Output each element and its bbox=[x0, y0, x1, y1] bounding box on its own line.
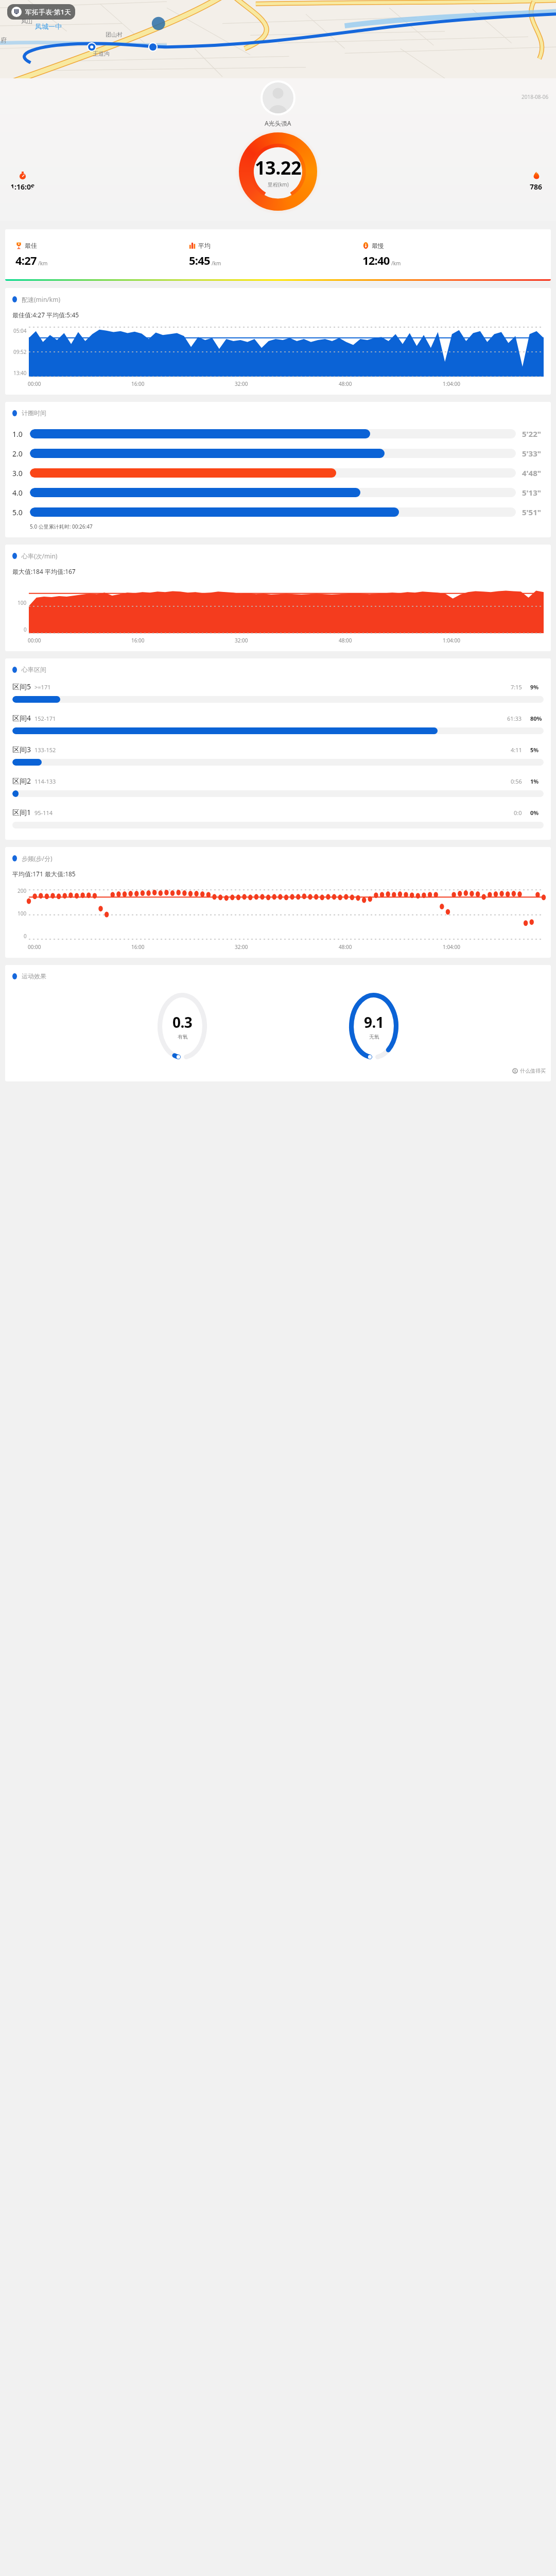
staticText: 16:00 bbox=[131, 637, 145, 644]
staticText: 12:40 bbox=[362, 252, 390, 268]
staticText: 48:00 bbox=[339, 380, 352, 387]
staticText: 32:00 bbox=[235, 380, 248, 387]
staticText: 配速(min/km) bbox=[22, 295, 61, 303]
staticText: 00:00 bbox=[28, 637, 41, 644]
staticText: 00:00 bbox=[28, 380, 41, 387]
staticText: 最慢 bbox=[372, 242, 384, 249]
staticText: 0 bbox=[24, 933, 27, 940]
staticText: >=171 bbox=[34, 683, 51, 691]
staticText: 95-114 bbox=[34, 809, 53, 817]
staticText: 32:00 bbox=[235, 637, 248, 644]
button[interactable]: 0.3 bbox=[158, 993, 207, 1060]
staticText: 团山村 bbox=[106, 31, 123, 38]
staticText: 有氧 bbox=[178, 1033, 188, 1040]
staticText: 里程(km) bbox=[268, 181, 289, 188]
staticText: 786 bbox=[530, 182, 543, 192]
button[interactable]: 区间1 bbox=[5, 807, 551, 839]
staticText: 9.1 bbox=[364, 1012, 384, 1032]
button[interactable]: 最佳 bbox=[5, 229, 551, 281]
button[interactable]: 786 bbox=[530, 172, 543, 192]
staticText: 5% bbox=[530, 746, 539, 754]
button[interactable]: 配速(min/km) bbox=[5, 288, 551, 306]
staticText: 最大值:184 平均值:167 bbox=[12, 567, 76, 575]
staticText: 4:11 bbox=[511, 746, 522, 754]
staticText: 4:27 bbox=[15, 252, 37, 268]
staticText: 48:00 bbox=[339, 943, 352, 951]
staticText: 3.0 bbox=[12, 468, 23, 478]
staticText: 凤山 bbox=[21, 18, 32, 25]
staticText: 32:00 bbox=[235, 943, 248, 951]
staticText: 1:04:00 bbox=[443, 380, 460, 387]
staticText: 5:45 bbox=[189, 252, 210, 268]
staticText: 王道沟 bbox=[93, 50, 110, 57]
staticText: 1:16:09 bbox=[10, 182, 35, 192]
button[interactable]: Profile avatar bbox=[263, 82, 293, 113]
staticText: 80% bbox=[530, 715, 542, 722]
staticText: 13:40 bbox=[13, 369, 27, 377]
staticText: 5'51" bbox=[522, 507, 541, 517]
staticText: 200 bbox=[18, 887, 27, 894]
staticText: 区间1 bbox=[12, 807, 31, 817]
staticText: 最佳 bbox=[25, 242, 37, 249]
staticText: 48:00 bbox=[339, 637, 352, 644]
staticText: 区间4 bbox=[12, 713, 31, 723]
button[interactable]: 军拓手表·第1天 bbox=[7, 4, 75, 20]
staticText: 00:00 bbox=[28, 943, 41, 951]
staticText: 最佳值:4:27 平均值:5:45 bbox=[12, 311, 79, 319]
button[interactable]: 区间3 bbox=[5, 744, 551, 776]
staticText: A光头强A bbox=[265, 119, 291, 127]
staticText: 0:56 bbox=[511, 777, 522, 785]
button[interactable]: 运动效果 bbox=[5, 965, 551, 982]
staticText: 运动效果 bbox=[22, 972, 46, 980]
button[interactable]: 9.1 bbox=[349, 993, 398, 1060]
staticText: 2.0 bbox=[12, 449, 23, 459]
staticText: 区间2 bbox=[12, 776, 31, 786]
staticText: 152-171 bbox=[34, 715, 56, 722]
staticText: /km bbox=[38, 260, 48, 267]
staticText: 心率(次/min) bbox=[22, 552, 58, 560]
staticText: 16:00 bbox=[131, 943, 145, 951]
staticText: 平均 bbox=[198, 242, 211, 249]
staticText: 2018-08-06 bbox=[522, 93, 549, 100]
button[interactable]: 1:16:09 bbox=[10, 172, 35, 192]
staticText: 100 bbox=[18, 910, 27, 917]
staticText: 区间3 bbox=[12, 744, 31, 754]
staticText: 7:15 bbox=[511, 683, 522, 691]
staticText: 0 bbox=[24, 626, 27, 633]
button[interactable]: 3.0 bbox=[5, 463, 551, 483]
staticText: 114-133 bbox=[34, 777, 56, 785]
staticText: 61:33 bbox=[507, 715, 522, 722]
staticText: 5'22" bbox=[522, 429, 541, 439]
staticText: 计圈时间 bbox=[22, 409, 46, 417]
staticText: 4'48" bbox=[522, 468, 541, 478]
staticText: 军拓手表·第1天 bbox=[25, 7, 71, 16]
button[interactable]: 区间4 bbox=[5, 713, 551, 744]
staticText: 平均值:171 最大值:185 bbox=[12, 870, 76, 878]
button[interactable]: 步频(步/分) bbox=[5, 847, 551, 865]
staticText: 府 bbox=[1, 36, 7, 44]
button[interactable]: 4.0 bbox=[5, 483, 551, 502]
staticText: 1:04:00 bbox=[443, 637, 460, 644]
button[interactable]: 1.0 bbox=[5, 424, 551, 444]
button[interactable]: 心率(次/min) bbox=[5, 545, 551, 562]
staticText: 区间5 bbox=[12, 682, 31, 691]
staticText: 5'33" bbox=[522, 448, 541, 459]
button[interactable]: 2.0 bbox=[5, 444, 551, 463]
staticText: 凤城一中 bbox=[35, 22, 62, 30]
staticText: 5.0 bbox=[12, 507, 23, 517]
staticText: 1:04:00 bbox=[443, 943, 460, 951]
staticText: 0:0 bbox=[514, 809, 522, 817]
button[interactable]: 5.0 bbox=[5, 502, 551, 522]
staticText: 0% bbox=[530, 809, 539, 817]
staticText: 什么值得买 bbox=[520, 1067, 546, 1074]
button[interactable]: 区间5 bbox=[5, 682, 551, 713]
staticText: 心率区间 bbox=[22, 666, 46, 673]
staticText: 1% bbox=[530, 777, 539, 785]
button[interactable]: 心率区间 bbox=[5, 658, 551, 675]
button[interactable]: 计圈时间 bbox=[5, 402, 551, 419]
staticText: 无氧 bbox=[369, 1033, 379, 1040]
staticText: 5.0 公里累计耗时: 00:26:47 bbox=[30, 523, 93, 530]
staticText: 5'13" bbox=[522, 487, 541, 498]
button[interactable]: 区间2 bbox=[5, 776, 551, 807]
staticText: 100 bbox=[18, 599, 27, 606]
